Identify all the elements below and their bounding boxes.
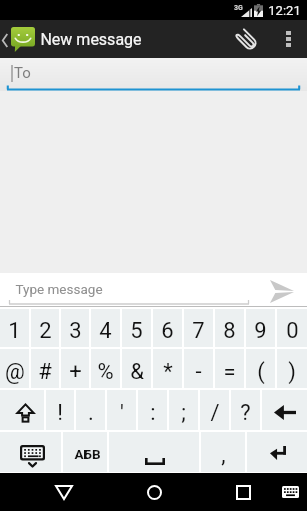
button[interactable]: & <box>122 349 151 388</box>
button[interactable]: 0 <box>277 309 307 347</box>
button[interactable]: Hide keyboard <box>0 432 61 472</box>
staticText: % <box>97 359 114 385</box>
button[interactable]: + <box>61 349 89 388</box>
button[interactable]: Type message <box>15 281 103 297</box>
button[interactable]: Recents <box>198 473 288 511</box>
other: Navigate up <box>2 34 8 47</box>
staticText: 0 <box>286 318 299 344</box>
button[interactable]: ! <box>46 390 74 430</box>
staticText: New message <box>40 30 142 49</box>
button[interactable]: АБВ <box>63 432 107 472</box>
staticText: 9 <box>254 318 267 344</box>
staticText: 5 <box>130 318 143 344</box>
button[interactable]: ? <box>231 390 260 430</box>
button[interactable]: @ <box>0 349 29 388</box>
staticText: To <box>14 64 31 82</box>
staticText: ! <box>57 400 63 426</box>
staticText: Type message <box>15 281 103 297</box>
other: Enter <box>270 446 286 460</box>
staticText: . <box>88 400 94 426</box>
staticText: / <box>210 400 220 426</box>
button[interactable]: Shift <box>0 390 44 430</box>
button[interactable]: 2 <box>31 309 59 347</box>
staticText: 2 <box>39 318 52 344</box>
button[interactable]: , <box>201 432 245 472</box>
staticText: @ <box>5 359 25 385</box>
button[interactable]: Home <box>109 473 199 511</box>
button[interactable]: . <box>76 390 105 430</box>
other: Space <box>145 458 165 465</box>
staticText: * <box>163 359 173 385</box>
button[interactable]: % <box>91 349 120 388</box>
button[interactable]: * <box>153 349 182 388</box>
staticText: ; <box>181 400 186 426</box>
other: Hide keyboard <box>20 445 45 467</box>
button[interactable]: 1 <box>0 309 29 347</box>
staticText: 7 <box>192 318 205 344</box>
button[interactable]: 7 <box>184 309 213 347</box>
button[interactable]: = <box>215 349 244 388</box>
button[interactable]: Back <box>19 473 109 511</box>
staticText: + <box>69 359 82 385</box>
staticText: 3G <box>234 4 243 12</box>
staticText: 3 <box>69 318 82 344</box>
button[interactable]: 6 <box>153 309 182 347</box>
button[interactable]: Navigate up <box>0 20 142 58</box>
staticText: - <box>195 359 202 385</box>
button[interactable]: / <box>200 390 229 430</box>
button[interactable]: To <box>0 58 307 91</box>
button[interactable]: Enter <box>247 432 307 472</box>
other: Backspace <box>274 405 296 420</box>
button[interactable]: : <box>138 390 167 430</box>
button[interactable]: 5 <box>122 309 151 347</box>
staticText: , <box>221 442 226 468</box>
staticText: & <box>130 359 144 385</box>
button[interactable]: ) <box>277 349 307 388</box>
staticText: = <box>223 359 236 385</box>
staticText: 6 <box>161 318 174 344</box>
staticText: ? <box>240 400 251 426</box>
other: Shift <box>17 404 34 422</box>
staticText: ( <box>257 359 265 385</box>
button[interactable]: Switch keyboard <box>273 473 307 511</box>
button[interactable]: # <box>31 349 59 388</box>
staticText: АБВ <box>74 446 101 462</box>
button[interactable]: 9 <box>246 309 275 347</box>
button[interactable]: 8 <box>215 309 244 347</box>
button[interactable]: More options <box>271 20 305 58</box>
button[interactable]: - <box>184 349 213 388</box>
staticText: ) <box>288 359 296 385</box>
button[interactable]: Backspace <box>262 390 307 430</box>
button[interactable]: 4 <box>91 309 120 347</box>
button[interactable]: ' <box>107 390 136 430</box>
staticText: 12:21 <box>268 3 301 18</box>
button[interactable]: 3 <box>61 309 89 347</box>
button[interactable]: Space <box>109 432 199 472</box>
staticText: : <box>150 400 156 426</box>
button[interactable]: ; <box>169 390 198 430</box>
button[interactable]: ( <box>246 349 275 388</box>
staticText: # <box>38 359 52 385</box>
staticText: 8 <box>223 318 236 344</box>
button[interactable]: Send <box>256 273 307 307</box>
button[interactable]: Attach <box>221 20 271 58</box>
staticText: 4 <box>99 318 112 344</box>
staticText: 1 <box>8 318 21 344</box>
staticText: ' <box>120 400 124 426</box>
